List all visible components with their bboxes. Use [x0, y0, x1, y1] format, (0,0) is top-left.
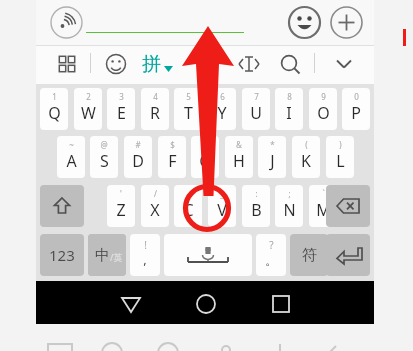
button[interactable]: @ — [90, 136, 118, 178]
staticText: K — [301, 150, 311, 172]
button[interactable]: 6 — [208, 88, 236, 130]
staticText: S — [100, 150, 109, 172]
button[interactable]: 拼 — [142, 51, 180, 77]
staticText: 4 — [153, 91, 158, 102]
button[interactable]: - — [174, 185, 202, 227]
button[interactable]: & — [225, 136, 253, 178]
button[interactable]: Move cursor — [235, 50, 263, 78]
staticText: / — [154, 188, 157, 199]
button[interactable]: 符 — [290, 234, 328, 276]
button[interactable]: 9 — [309, 88, 337, 130]
button[interactable]: 8 — [275, 88, 303, 130]
button[interactable]: : — [242, 185, 270, 227]
staticText: 6 — [220, 91, 225, 102]
button[interactable]: Keyboard layouts — [53, 50, 81, 78]
button[interactable]: _ — [208, 185, 236, 227]
button[interactable]: 7 — [242, 88, 270, 130]
staticText: J — [270, 150, 275, 172]
staticText: 符 — [302, 246, 317, 265]
staticText: _ — [220, 188, 224, 199]
button[interactable]: Shift — [40, 185, 84, 227]
staticText: Y — [217, 102, 227, 124]
button[interactable]: ( — [292, 136, 320, 178]
button[interactable]: ! — [130, 234, 160, 276]
button[interactable]: Backspace — [326, 185, 370, 227]
button[interactable]: 4 — [141, 88, 169, 130]
staticText: P — [351, 102, 361, 124]
button[interactable]: 1 — [40, 88, 68, 130]
staticText: E — [117, 102, 126, 124]
staticText: O — [317, 102, 330, 124]
staticText: T — [184, 102, 193, 124]
staticText: ' — [120, 188, 122, 199]
staticText: R — [150, 102, 160, 124]
button[interactable]: 123 — [40, 234, 84, 276]
staticText: 3 — [119, 91, 124, 102]
staticText: C — [183, 199, 194, 221]
button[interactable]: Hide keyboard — [330, 50, 358, 78]
staticText: $ — [170, 139, 175, 150]
staticText: 7 — [254, 91, 259, 102]
staticText: # — [135, 139, 141, 150]
button[interactable]: 中 — [88, 234, 126, 276]
button[interactable]: Search — [276, 50, 304, 78]
button[interactable]: $ — [158, 136, 186, 178]
button[interactable]: 0 — [342, 88, 370, 130]
button[interactable]: 5 — [174, 88, 202, 130]
staticText: Q — [48, 102, 61, 124]
staticText: 中 — [95, 246, 110, 265]
button[interactable]: ) — [326, 136, 354, 178]
button[interactable]: Recents — [265, 288, 297, 320]
button[interactable]: Home — [190, 288, 222, 320]
button[interactable]: Back — [115, 288, 147, 320]
button[interactable]: Add — [330, 6, 363, 39]
button[interactable]: ~ — [57, 136, 85, 178]
button[interactable]: ? — [256, 234, 286, 276]
staticText: N — [283, 199, 296, 221]
staticText: V — [217, 199, 227, 221]
staticText: I — [286, 102, 292, 124]
staticText: 。 — [265, 252, 278, 268]
staticText: /英 — [110, 251, 123, 263]
button[interactable]: 3 — [107, 88, 135, 130]
staticText: , — [143, 250, 147, 268]
button[interactable]: Emoji panel — [102, 50, 130, 78]
button[interactable]: Enter — [326, 234, 370, 276]
staticText: L — [336, 150, 345, 172]
staticText: ? — [269, 238, 274, 252]
staticText: D — [132, 150, 144, 172]
button[interactable]: 2 — [74, 88, 102, 130]
button[interactable]: Space — [164, 234, 252, 276]
staticText: ` — [322, 188, 325, 199]
staticText: A — [66, 150, 77, 172]
staticText: ( — [305, 139, 308, 150]
button[interactable]: ; — [275, 185, 303, 227]
button[interactable]: Chinese / English — [88, 234, 126, 276]
staticText: F — [168, 150, 177, 172]
staticText: ; — [288, 188, 291, 199]
staticText: ) — [339, 139, 342, 150]
button[interactable]: % — [191, 136, 219, 178]
staticText: U — [250, 102, 262, 124]
button[interactable]: Emoji — [288, 6, 321, 39]
staticText: 2 — [86, 91, 91, 102]
staticText: - — [187, 188, 190, 199]
staticText: W — [81, 102, 96, 124]
staticText: ~ — [69, 139, 74, 150]
staticText: 拼 — [142, 52, 161, 76]
button[interactable]: / — [141, 185, 169, 227]
button[interactable]: # — [124, 136, 152, 178]
staticText: & — [236, 139, 242, 150]
staticText: H — [233, 150, 245, 172]
button[interactable]: ' — [107, 185, 135, 227]
staticText: B — [251, 199, 262, 221]
staticText: * — [270, 139, 275, 150]
button[interactable]: ` — [309, 185, 337, 227]
staticText: M — [316, 199, 331, 221]
button[interactable]: * — [258, 136, 286, 178]
staticText: : — [255, 188, 258, 199]
staticText: 1 — [52, 91, 57, 102]
staticText: X — [150, 199, 160, 221]
button[interactable]: Voice input — [50, 6, 83, 39]
